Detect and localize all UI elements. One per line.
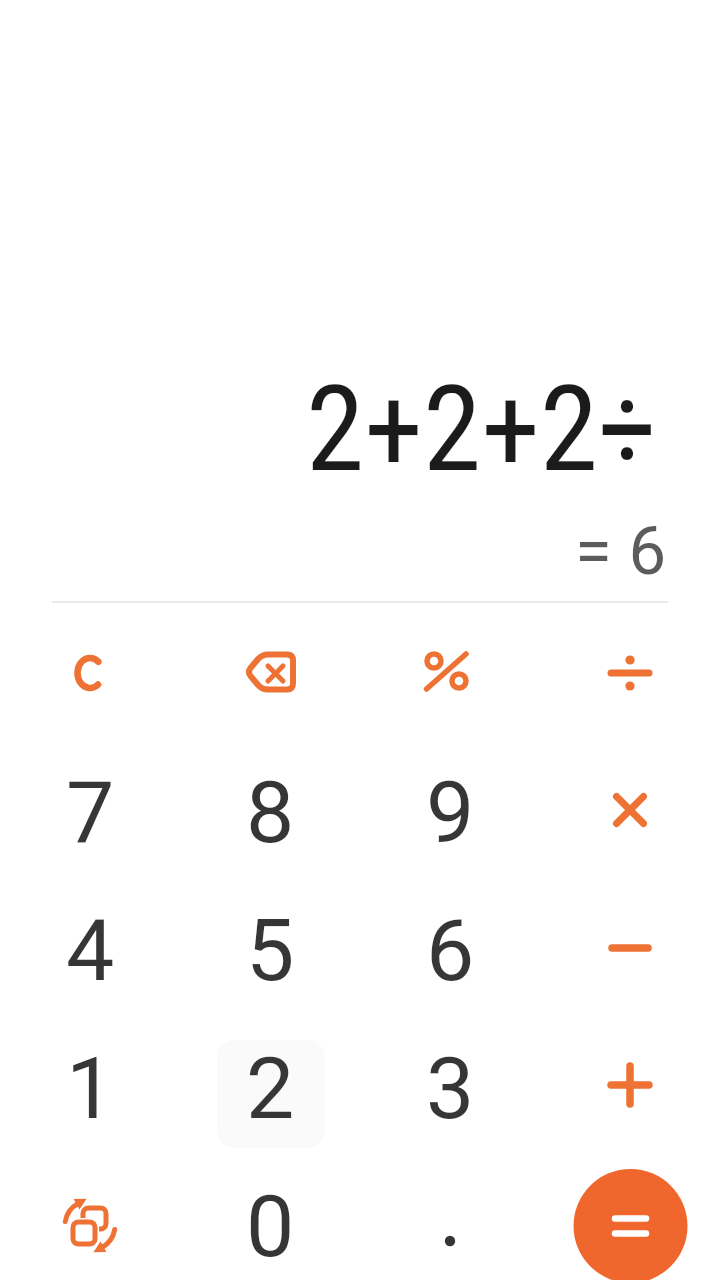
staticText: 2+2+2÷ (306, 361, 658, 499)
staticText: 0 (246, 1176, 295, 1277)
staticText: 5 (246, 900, 295, 1001)
staticText: 3 (426, 1038, 475, 1139)
staticText: 6 (426, 900, 475, 1001)
staticText: 7 (66, 762, 115, 863)
staticText: 9 (426, 762, 475, 863)
staticText: 2 (246, 1038, 295, 1139)
staticText: = 6 (575, 512, 667, 582)
staticText: 4 (66, 900, 115, 1001)
staticText: 1 (66, 1038, 115, 1139)
staticText: 8 (246, 762, 295, 863)
